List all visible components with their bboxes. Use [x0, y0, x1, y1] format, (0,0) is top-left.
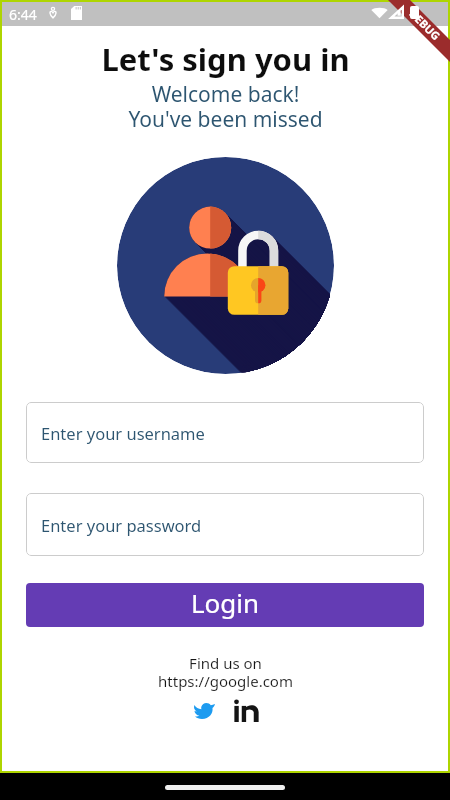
staticText: Enter your username: [41, 422, 205, 444]
staticText: Let's sign you in: [101, 38, 350, 80]
staticText: DEBUG: [406, 6, 444, 43]
button[interactable]: Home: [165, 785, 285, 790]
staticText: Login: [191, 585, 260, 620]
staticText: Welcome back! You've been missed: [128, 80, 323, 133]
staticText: 6:44: [9, 5, 37, 24]
button[interactable]: Login: [26, 583, 424, 627]
button[interactable]: LinkedIn: [232, 696, 260, 724]
button[interactable]: Enter your username: [26, 402, 424, 463]
button[interactable]: Enter your password: [26, 493, 424, 556]
staticText: Find us on https://google.com: [158, 653, 293, 691]
button[interactable]: Twitter: [190, 696, 218, 724]
staticText: Enter your password: [41, 514, 202, 536]
